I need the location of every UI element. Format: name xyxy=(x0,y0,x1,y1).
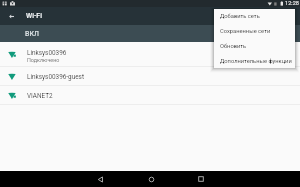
staticText: Сохраненные сети xyxy=(220,28,271,35)
button[interactable]: Linksys00396-guest xyxy=(0,67,300,85)
staticText: 12:28 xyxy=(285,0,299,7)
button[interactable]: ВКЛ xyxy=(0,25,300,42)
staticText: Linksys00396 xyxy=(27,49,67,57)
button[interactable]: Recents xyxy=(176,171,226,187)
button[interactable]: VIANET2 xyxy=(0,86,300,104)
staticText: VIANET2 xyxy=(27,92,53,100)
button[interactable]: Home xyxy=(126,171,176,187)
staticText: Обновить xyxy=(220,43,247,50)
staticText: ВКЛ xyxy=(25,30,39,38)
button[interactable]: Дополнительные функции xyxy=(214,54,295,68)
staticText: Добавить сеть xyxy=(220,13,260,20)
button[interactable]: Добавить сеть xyxy=(214,9,295,24)
button[interactable]: Linksys00396 xyxy=(0,42,300,66)
button[interactable]: Сохраненные сети xyxy=(214,24,295,39)
staticText: Дополнительные функции xyxy=(220,58,292,65)
staticText: Подключено xyxy=(27,57,60,63)
button[interactable]: Back xyxy=(75,171,125,187)
button[interactable]: Back xyxy=(4,7,18,25)
button[interactable]: Обновить xyxy=(214,39,295,54)
staticText: Wi-Fi xyxy=(26,12,42,20)
staticText: Linksys00396-guest xyxy=(27,73,84,81)
